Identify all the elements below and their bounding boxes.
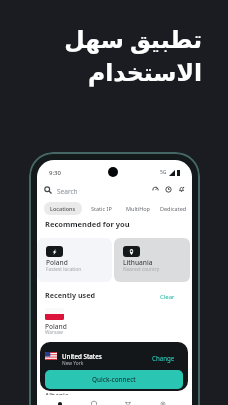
button[interactable]: Dedicated: [158, 202, 189, 215]
staticText: Dedicated: [160, 205, 187, 212]
button[interactable]: Quick-connect: [45, 370, 183, 389]
button[interactable]: Settings: [150, 398, 176, 405]
staticText: Recommended for you: [45, 219, 130, 229]
staticText: تطبيق سهل: [64, 23, 202, 55]
button[interactable]: Poland: [37, 306, 190, 338]
staticText: Search: [57, 187, 78, 196]
staticText: Tirana: [45, 398, 60, 405]
button[interactable]: Albania: [37, 375, 190, 405]
staticText: Quick-connect: [92, 375, 136, 384]
staticText: MultiHop: [126, 205, 150, 212]
staticText: Nearest country: [123, 266, 160, 273]
staticText: New York: [62, 360, 84, 367]
staticText: United States: [62, 352, 102, 360]
button[interactable]: Meshnet: [115, 398, 141, 405]
button[interactable]: Speed test: [152, 186, 159, 193]
staticText: Lithuania: [123, 258, 153, 267]
staticText: Poland: [45, 322, 67, 331]
staticText: Albania: [45, 391, 69, 400]
staticText: الاستخدام: [87, 59, 202, 86]
staticText: Static IP: [91, 205, 112, 212]
staticText: Recently used: [45, 290, 96, 300]
staticText: Locations: [50, 205, 76, 212]
staticText: 5G: [160, 169, 167, 176]
button[interactable]: Static IP: [89, 202, 114, 215]
staticText: Poland: [46, 258, 68, 267]
button[interactable]: Threat protection: [81, 398, 107, 405]
button[interactable]: Poland: [37, 238, 112, 282]
staticText: Change: [152, 354, 175, 362]
button[interactable]: VPN: [47, 398, 73, 405]
button[interactable]: Locations: [44, 202, 82, 215]
button[interactable]: Recent connections: [165, 186, 172, 193]
button[interactable]: Lithuania: [114, 238, 190, 282]
staticText: Fastest location: [46, 266, 82, 273]
button[interactable]: Change: [152, 354, 175, 362]
staticText: Clear: [160, 293, 175, 301]
staticText: Warsaw: [45, 329, 63, 336]
button[interactable]: MultiHop: [124, 202, 152, 215]
staticText: 9:30: [49, 169, 61, 177]
button[interactable]: Notifications: [178, 186, 185, 193]
button[interactable]: Clear: [158, 291, 177, 303]
